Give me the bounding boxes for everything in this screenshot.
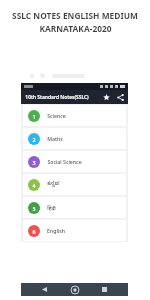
- staticText: 1: [32, 113, 36, 120]
- staticText: ಕನ್ನಡ: [47, 181, 59, 188]
- button[interactable]: 2: [23, 128, 126, 149]
- button[interactable]: Home: [69, 284, 81, 296]
- button[interactable]: Share: [115, 92, 125, 102]
- button[interactable]: 5: [23, 197, 126, 218]
- staticText: 5: [32, 205, 36, 212]
- button[interactable]: 3: [23, 151, 126, 172]
- staticText: Science: [47, 112, 66, 119]
- staticText: 3: [32, 159, 36, 166]
- button[interactable]: Recent apps: [99, 284, 110, 295]
- button[interactable]: 4: [23, 174, 126, 195]
- button[interactable]: Back: [39, 284, 50, 295]
- staticText: 4: [32, 182, 36, 189]
- button[interactable]: 6: [23, 220, 126, 241]
- button[interactable]: Favourite: [101, 92, 111, 102]
- staticText: हिंदी: [47, 204, 56, 211]
- staticText: English: [47, 227, 65, 234]
- staticText: Maths: [47, 135, 63, 142]
- button[interactable]: 1: [23, 105, 126, 126]
- staticText: 2: [32, 136, 36, 143]
- staticText: KARNATAKA-2020: [39, 23, 112, 34]
- staticText: SSLC NOTES ENGLISH MEDIUM: [12, 10, 138, 21]
- staticText: 10th Standard Notes(SSLC): [25, 94, 89, 101]
- staticText: 6: [32, 228, 36, 235]
- staticText: Social Science: [47, 158, 82, 165]
